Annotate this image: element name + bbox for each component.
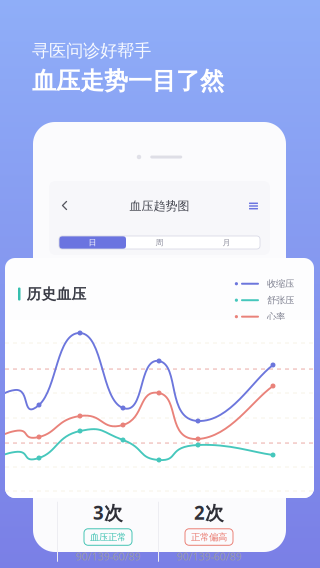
staticText: 周 — [155, 238, 163, 247]
button[interactable]: List — [248, 200, 259, 211]
button[interactable]: 日 — [59, 236, 126, 249]
button[interactable]: Back — [60, 199, 72, 213]
staticText: 心率 — [267, 311, 285, 322]
staticText: 血压趋势图 — [129, 199, 189, 213]
staticText: 历史血压 — [26, 285, 86, 303]
staticText: 日 — [88, 238, 96, 247]
staticText: 3次 — [93, 500, 123, 525]
staticText: 血压走势一目了然 — [32, 66, 224, 96]
staticText: 90/139-60/89 — [75, 549, 140, 563]
staticText: 舒张压 — [267, 294, 294, 306]
staticText: 2次 — [194, 500, 224, 525]
staticText: 收缩压 — [267, 278, 294, 289]
staticText: 月 — [222, 238, 230, 247]
button[interactable]: 月 — [193, 236, 260, 249]
staticText: 寻医问诊好帮手 — [32, 40, 151, 61]
staticText: 正常偏高 — [191, 531, 227, 543]
staticText: 90/139-60/89 — [176, 549, 241, 563]
staticText: 血压正常 — [90, 531, 126, 543]
button[interactable]: 周 — [126, 236, 193, 249]
